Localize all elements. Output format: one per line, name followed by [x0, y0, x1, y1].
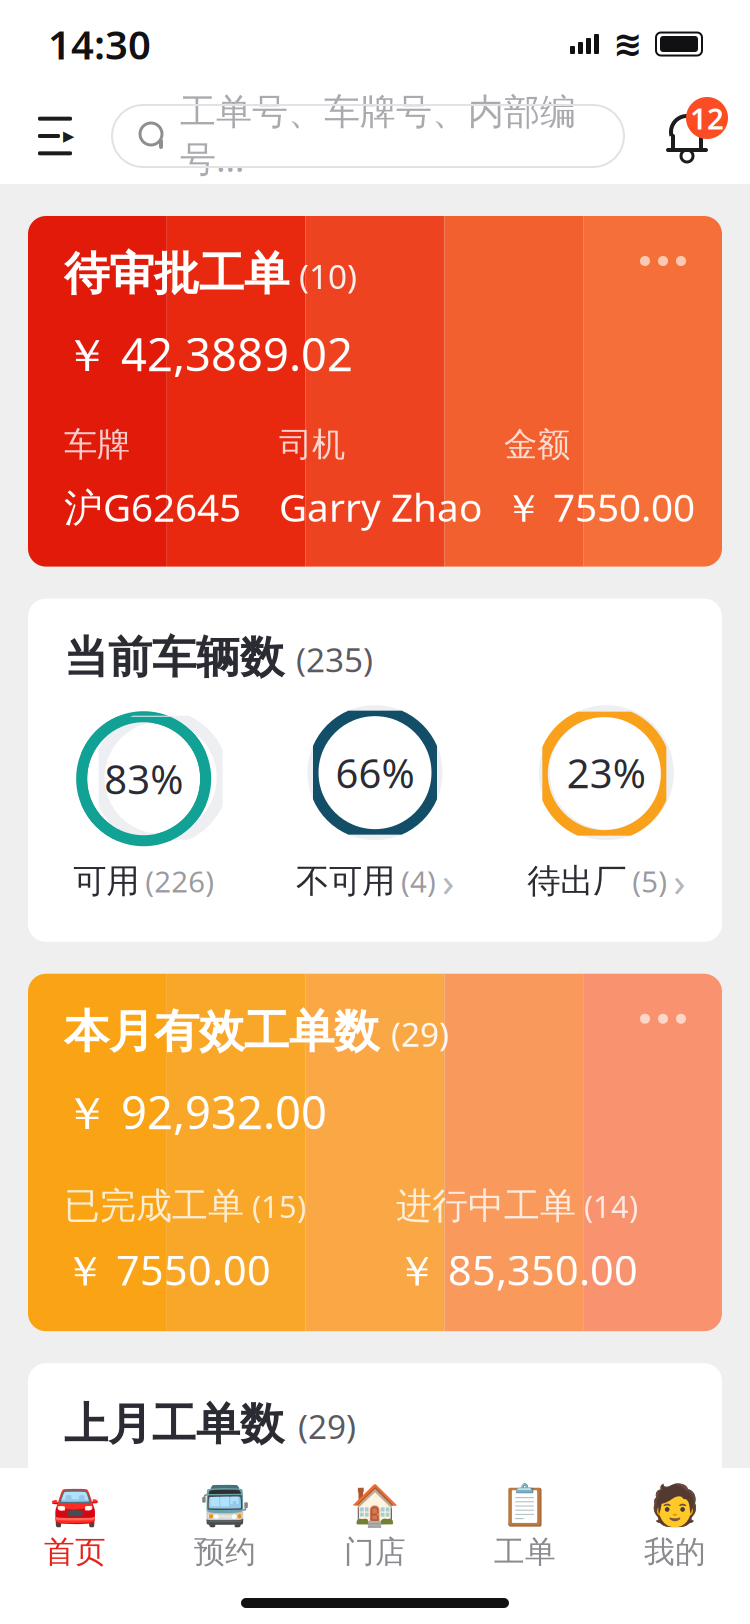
staticText: ￥ 85,350.00 [396, 1242, 638, 1297]
staticText: 🧑 [650, 1482, 700, 1528]
staticText: 工单 [494, 1533, 556, 1571]
staticText: 车牌 [64, 424, 130, 465]
staticText: 我的 [644, 1533, 706, 1571]
button[interactable]: 23% [491, 711, 722, 908]
staticText: 已完成工单 [64, 1184, 244, 1228]
staticText: ￥ 42,3889.02 [64, 324, 353, 384]
staticText: (226) [145, 862, 214, 901]
staticText: ￥ 92,932.00 [64, 1081, 327, 1142]
staticText: 沪G62645 [64, 481, 241, 532]
button[interactable]: 🧑 [600, 1473, 750, 1581]
button[interactable]: 通知 [654, 103, 720, 169]
staticText: 🏠 [350, 1482, 400, 1528]
button[interactable]: 本月有效工单数 [28, 974, 722, 1331]
button[interactable]: 待审批工单 [28, 216, 722, 567]
staticText: 📋 [500, 1482, 550, 1528]
staticText: ▶ [63, 128, 74, 144]
staticText: (29) [391, 1012, 449, 1056]
staticText: 进行中工单 [396, 1184, 576, 1228]
button[interactable]: 📋 [450, 1473, 600, 1581]
staticText: (10) [299, 254, 357, 298]
button[interactable]: 66% [259, 711, 491, 908]
staticText: › [442, 855, 454, 908]
staticText: (235) [296, 637, 373, 681]
staticText: 83% [104, 752, 183, 805]
staticText: 14:30 [48, 17, 151, 70]
staticText: 待审批工单 [64, 246, 289, 302]
staticText: 🚍 [200, 1482, 250, 1528]
staticText: 66% [335, 746, 414, 799]
staticText: (15) [369, 1497, 423, 1538]
staticText: 本月有效工单数 [64, 1004, 379, 1059]
staticText: 门店 [344, 1533, 406, 1571]
staticText: ￥ 7550.00 [64, 1242, 271, 1297]
staticText: ￥ 7550.00 [504, 481, 695, 533]
staticText: 司机 [279, 424, 345, 465]
staticText: (5) [632, 862, 667, 901]
staticText: 当前车辆数 [64, 631, 284, 685]
staticText: 23% [567, 746, 646, 799]
staticText: (29) [298, 1404, 356, 1448]
staticText: ￥ 33,370.08 [437, 1491, 670, 1544]
staticText: (4) [401, 862, 436, 901]
staticText: 金额 [504, 424, 570, 465]
button[interactable]: 🏠 [300, 1473, 450, 1581]
staticText: 12 [690, 98, 724, 137]
staticText: 工单号、车牌号、内部编号… [180, 90, 576, 182]
button[interactable]: 工单号、车牌号、内部编号… [112, 105, 624, 167]
staticText: 可用 [73, 861, 139, 902]
staticText: 待出厂 [527, 861, 626, 902]
staticText: › [673, 855, 685, 908]
staticText: 不可用 [296, 861, 395, 902]
staticText: 首页 [44, 1533, 106, 1571]
staticText: 🚘 [50, 1482, 100, 1528]
staticText: (15) [252, 1186, 306, 1226]
staticText: 大修 [277, 1494, 355, 1542]
staticText: (14) [584, 1186, 638, 1226]
button[interactable]: 🚍 [150, 1473, 300, 1581]
staticText: 上月工单数 [64, 1397, 284, 1451]
staticText: Garry Zhao [279, 481, 482, 532]
button[interactable]: 🚘 [0, 1473, 150, 1581]
staticText: ≋ [613, 24, 642, 64]
button[interactable]: 菜单 [24, 105, 86, 167]
staticText: 预约 [194, 1533, 256, 1571]
